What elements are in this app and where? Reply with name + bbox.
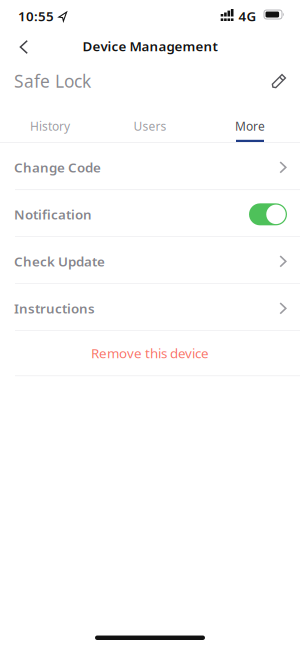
button[interactable]: Back — [0, 30, 29, 61]
button[interactable]: Users — [100, 100, 200, 142]
staticText: Instructions — [14, 299, 95, 317]
button[interactable]: History — [0, 100, 100, 142]
staticText: More — [235, 118, 265, 134]
staticText: Change Code — [14, 158, 101, 176]
button[interactable]: Notification — [249, 203, 287, 225]
button[interactable]: Check Update — [0, 237, 300, 284]
staticText: Notification — [14, 205, 92, 223]
staticText: History — [30, 118, 70, 134]
button[interactable]: Change Code — [0, 143, 300, 190]
staticText: Remove this device — [91, 344, 209, 362]
button[interactable]: Instructions — [0, 284, 300, 331]
staticText: 4 — [238, 7, 246, 25]
staticText: Users — [133, 118, 166, 134]
staticText: Check Update — [14, 252, 105, 270]
staticText: Device Management — [82, 37, 217, 55]
button[interactable]: Edit device name — [267, 69, 291, 93]
staticText: Safe Lock — [14, 69, 91, 92]
button[interactable]: Remove this device — [0, 331, 300, 376]
button[interactable]: More — [200, 100, 300, 142]
staticText: G — [246, 7, 256, 25]
staticText: 10:55 — [18, 7, 54, 25]
